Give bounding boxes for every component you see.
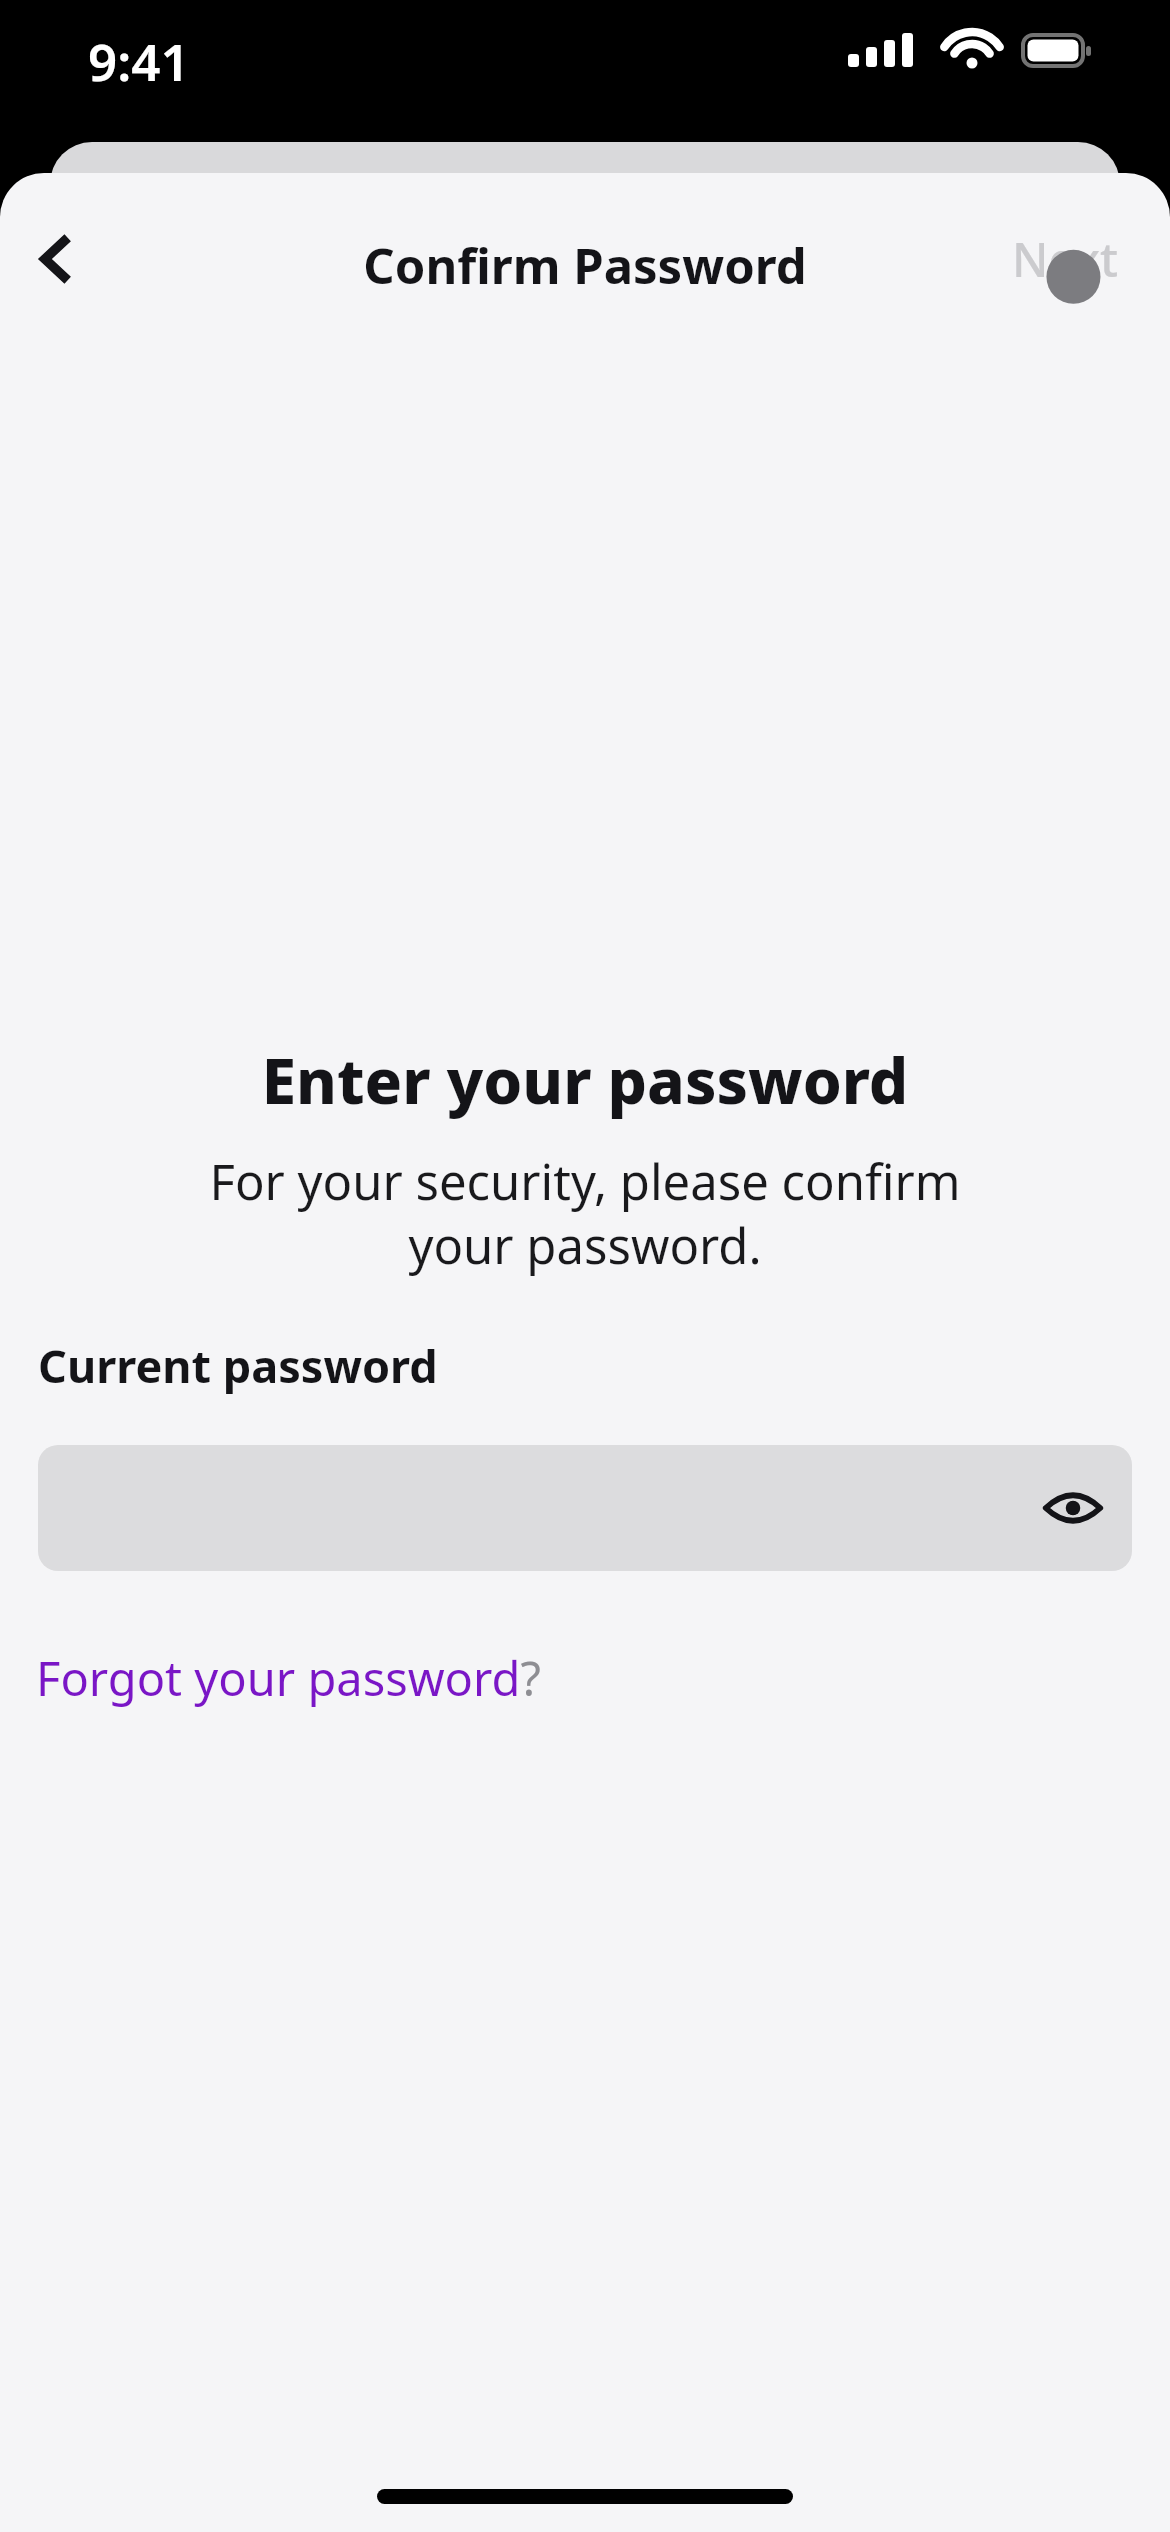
staticText: Confirm Password xyxy=(0,232,1170,299)
staticText: Enter your password xyxy=(0,1038,1170,1122)
staticText: 9:41 xyxy=(88,26,190,95)
button[interactable]: Back xyxy=(8,212,102,306)
button[interactable]: Next xyxy=(988,212,1142,306)
staticText: For your security, please confirm your p… xyxy=(50,1148,1120,1279)
staticText: Next xyxy=(1012,227,1119,291)
staticText: Forgot your password? xyxy=(36,1646,541,1710)
staticText: Current password xyxy=(38,1335,438,1396)
button[interactable]: Forgot your password? xyxy=(36,1646,541,1710)
button[interactable]: Show password xyxy=(38,1445,1132,1571)
button[interactable]: Show password xyxy=(1026,1461,1120,1555)
